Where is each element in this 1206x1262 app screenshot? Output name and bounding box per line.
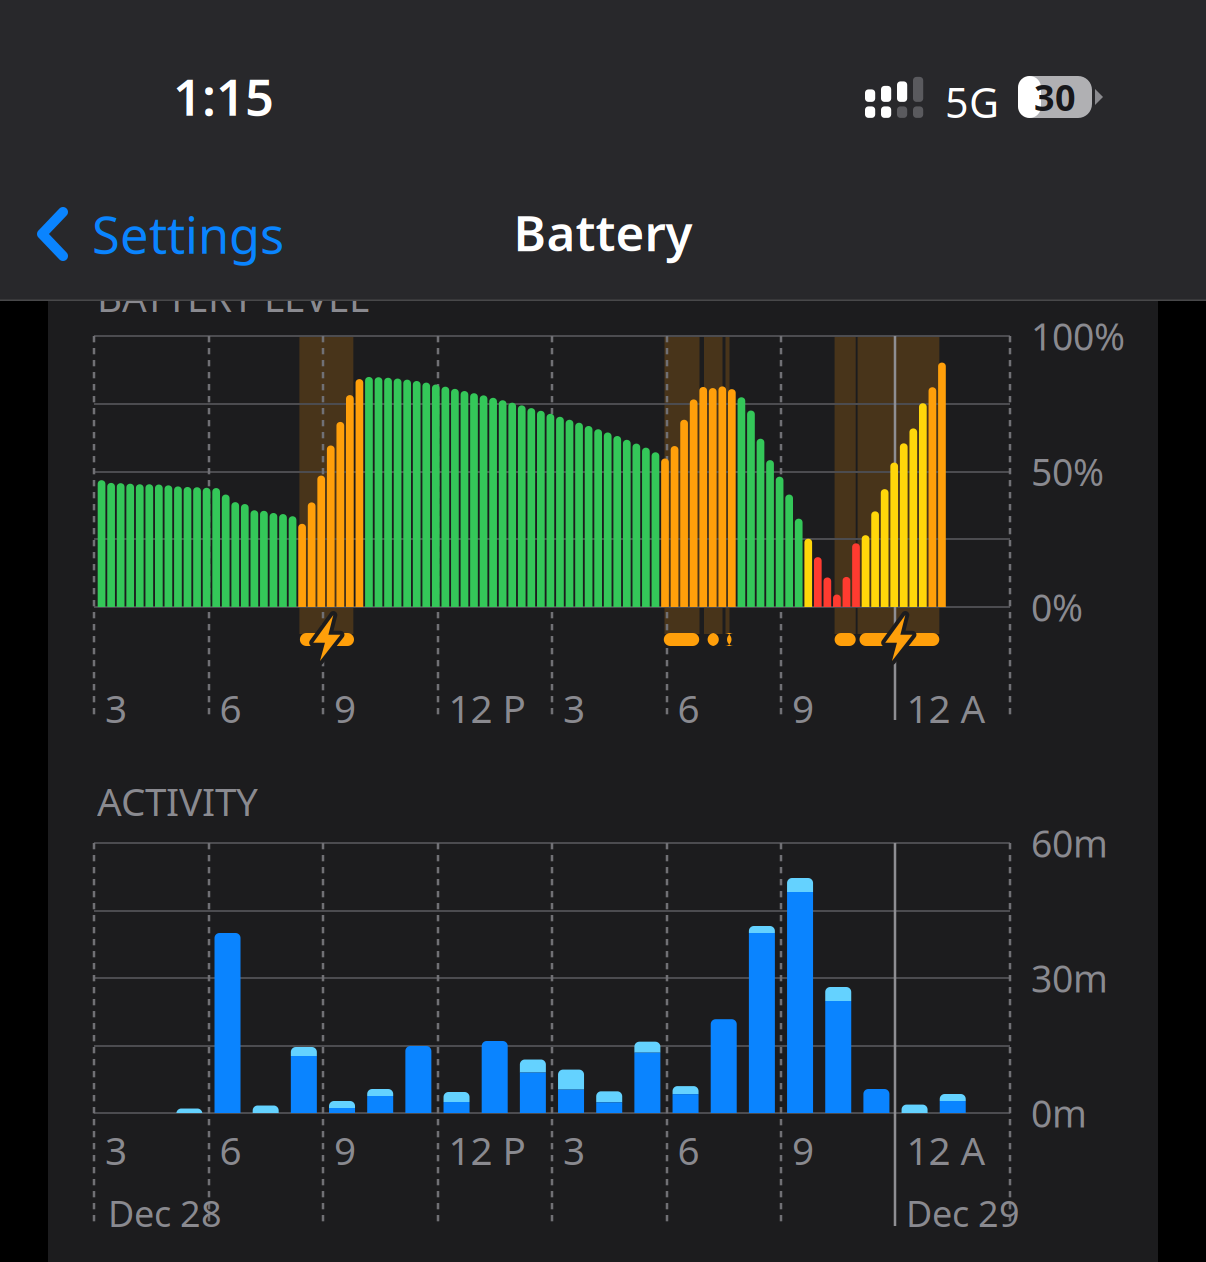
staticText: 12 A (906, 682, 985, 734)
staticText: BATTERY LEVEL (97, 271, 369, 323)
staticText: 9 (792, 682, 814, 734)
staticText: 0% (1031, 582, 1083, 632)
staticText: 9 (334, 682, 356, 734)
staticText: 12 P (448, 682, 525, 734)
staticText: Dec 28 (108, 1189, 222, 1237)
staticText: Dec 29 (906, 1189, 1020, 1237)
staticText: 3 (563, 682, 585, 734)
staticText: 9 (792, 1124, 814, 1176)
staticText: 50% (1031, 447, 1104, 496)
staticText: Battery (513, 199, 692, 265)
staticText: 6 (677, 682, 699, 734)
button[interactable]: Settings (36, 198, 416, 270)
staticText: 6 (677, 1124, 699, 1176)
staticText: Settings (92, 200, 284, 268)
staticText: 30 (1034, 73, 1076, 121)
staticText: ACTIVITY (97, 775, 258, 827)
staticText: 60m (1031, 818, 1108, 868)
staticText: 3 (105, 682, 127, 734)
staticText: 5G (945, 75, 999, 129)
staticText: 12 A (906, 1124, 985, 1176)
staticText: 3 (563, 1124, 585, 1176)
staticText: 6 (219, 1124, 241, 1176)
staticText: 100% (1031, 311, 1125, 361)
staticText: 30m (1031, 953, 1108, 1003)
staticText: 6 (219, 682, 241, 734)
staticText: 1:15 (173, 62, 274, 130)
staticText: 12 P (448, 1124, 525, 1176)
staticText: 3 (105, 1124, 127, 1176)
staticText: 0m (1031, 1088, 1087, 1138)
staticText: 9 (334, 1124, 356, 1176)
